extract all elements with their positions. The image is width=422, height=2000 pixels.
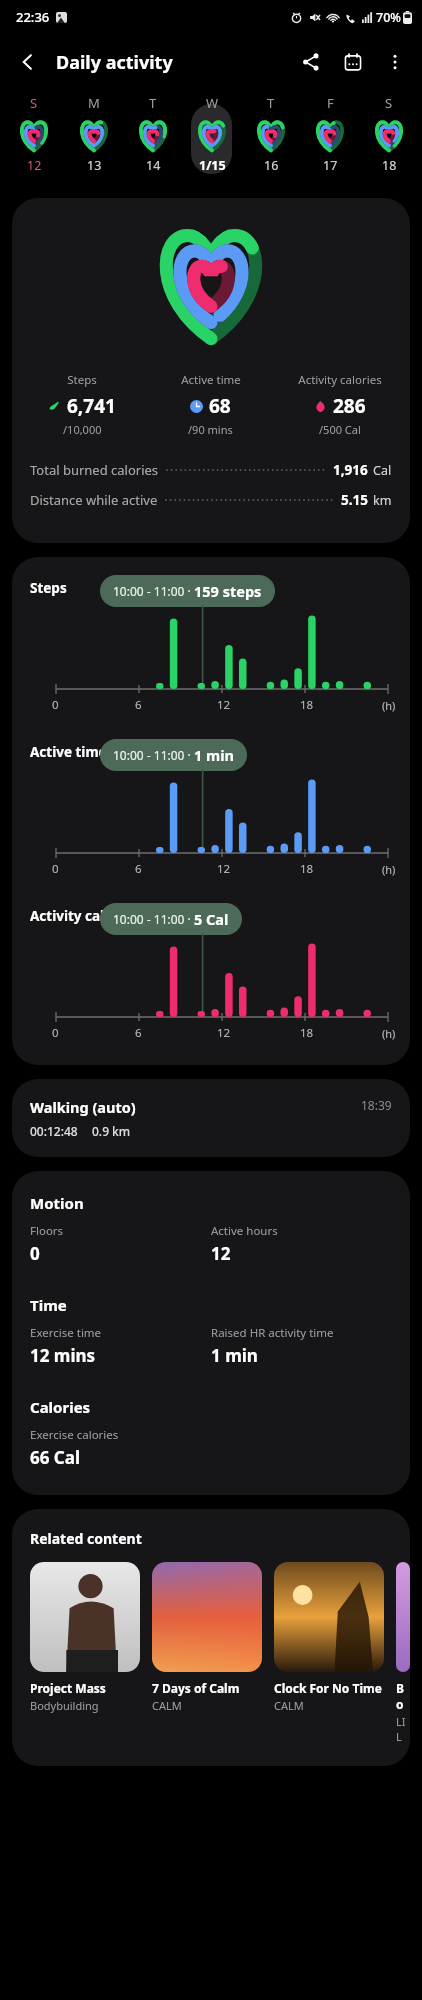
staticText: Active time — [30, 743, 107, 761]
staticText: 16 — [264, 157, 279, 174]
staticText: 0 — [52, 697, 59, 713]
staticText: 1,916 — [333, 461, 368, 479]
staticText: 10:00 - 11:00 · — [113, 583, 194, 599]
staticText: 0 — [52, 861, 59, 877]
staticText: 1 min — [194, 745, 234, 765]
staticText: Related content — [30, 1529, 142, 1548]
button[interactable]: W — [182, 90, 241, 186]
staticText: CALM — [152, 1698, 182, 1713]
staticText: 286 — [333, 393, 366, 419]
staticText: /500 Cal — [319, 422, 361, 437]
button[interactable]: S — [359, 90, 418, 186]
staticText: Clock For No Time — [274, 1680, 382, 1696]
staticText: 14 — [146, 157, 161, 174]
button[interactable]: M — [64, 90, 123, 186]
button[interactable]: Clock For No Time — [274, 1562, 384, 1713]
staticText: CALM — [274, 1698, 304, 1713]
button[interactable]: S — [4, 90, 64, 186]
button[interactable]: Active time — [12, 739, 410, 879]
staticText: 12 — [217, 697, 231, 713]
staticText: T — [267, 94, 275, 112]
staticText: 1/15 — [199, 157, 226, 174]
staticText: 12 — [217, 1025, 231, 1041]
staticText: Raised HR activity time — [211, 1325, 334, 1341]
staticText: 7 Days of Calm — [152, 1680, 240, 1696]
button[interactable]: Walking (auto) — [12, 1079, 410, 1157]
staticText: 00:12:48 — [30, 1123, 78, 1139]
button[interactable]: T — [241, 90, 300, 186]
button[interactable]: T — [123, 90, 182, 186]
button[interactable]: Activity calories — [12, 903, 410, 1043]
staticText: Project Mass — [30, 1680, 106, 1696]
staticText: W — [206, 94, 219, 112]
staticText: 12 — [27, 157, 42, 174]
staticText: 5 Cal — [194, 909, 229, 929]
staticText: 159 steps — [194, 581, 262, 601]
staticText: 10:00 - 11:00 · — [113, 747, 194, 763]
staticText: 0 — [30, 1242, 40, 1265]
staticText: Bo Ex — [396, 1680, 410, 1712]
staticText: Active time — [181, 372, 241, 388]
staticText: 6 — [135, 1025, 142, 1041]
staticText: Exercise time — [30, 1325, 102, 1341]
button[interactable]: Share — [290, 41, 332, 83]
staticText: Daily activity — [56, 50, 173, 75]
staticText: 17 — [323, 157, 338, 174]
staticText: Calories — [30, 1397, 91, 1417]
staticText: 0 — [52, 1025, 59, 1041]
staticText: 0.9 km — [92, 1123, 131, 1139]
staticText: 68 — [209, 393, 231, 419]
staticText: 18:39 — [361, 1097, 392, 1113]
staticText: 22:36 — [16, 8, 50, 26]
staticText: Floors — [30, 1223, 64, 1239]
staticText: 18 — [382, 157, 397, 174]
staticText: 13 — [87, 157, 102, 174]
staticText: /10,000 — [63, 422, 102, 437]
staticText: 12 mins — [30, 1344, 96, 1367]
button[interactable]: 7 Days of Calm — [152, 1562, 262, 1713]
staticText: 18 — [300, 861, 314, 877]
staticText: 5.15 — [341, 491, 368, 509]
staticText: Activity calories — [30, 907, 138, 925]
staticText: Steps — [30, 579, 67, 597]
button[interactable]: Steps — [12, 198, 410, 543]
staticText: km — [373, 492, 392, 509]
staticText: Motion — [30, 1193, 84, 1213]
staticText: S — [30, 94, 38, 112]
staticText: 18 — [300, 1025, 314, 1041]
staticText: 6,741 — [67, 393, 116, 419]
button[interactable]: Project Mass — [30, 1562, 140, 1713]
staticText: T — [149, 94, 157, 112]
button[interactable]: F — [300, 90, 359, 186]
staticText: Active hours — [211, 1223, 278, 1239]
button[interactable]: Steps — [12, 575, 410, 715]
staticText: Time — [30, 1295, 67, 1315]
staticText: 1 min — [211, 1344, 258, 1367]
staticText: Walking (auto) — [30, 1097, 136, 1117]
staticText: F — [327, 94, 334, 112]
staticText: 6 — [135, 861, 142, 877]
staticText: Exercise calories — [30, 1427, 119, 1443]
staticText: M — [88, 94, 100, 112]
staticText: 66 Cal — [30, 1446, 81, 1469]
button[interactable]: Back — [6, 40, 50, 84]
staticText: (h) — [382, 1026, 396, 1041]
staticText: Bodybuilding — [30, 1698, 99, 1713]
staticText: Cal — [373, 462, 392, 479]
staticText: (h) — [382, 698, 396, 713]
button[interactable]: Bo Ex — [396, 1562, 410, 1744]
staticText: S — [385, 94, 393, 112]
staticText: 6 — [135, 697, 142, 713]
staticText: 10:00 - 11:00 · — [113, 911, 194, 927]
button[interactable]: Calendar — [332, 41, 374, 83]
staticText: /90 mins — [188, 422, 233, 437]
staticText: Activity calories — [298, 372, 382, 388]
staticText: 70% — [376, 9, 401, 26]
staticText: Distance while active — [30, 491, 158, 509]
button[interactable]: More options — [374, 41, 416, 83]
staticText: Total burned calories — [30, 461, 159, 479]
staticText: 12 — [211, 1242, 231, 1265]
staticText: 12 — [217, 861, 231, 877]
staticText: 18 — [300, 697, 314, 713]
staticText: (h) — [382, 862, 396, 877]
